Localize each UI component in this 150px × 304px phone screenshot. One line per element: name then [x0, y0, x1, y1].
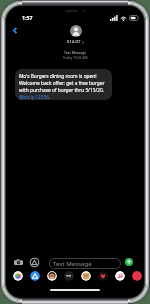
button[interactable]: More apps	[132, 271, 142, 281]
staticText: Welcome back offer: get a free burger	[19, 80, 105, 87]
button[interactable]: Send	[125, 258, 133, 266]
button[interactable]: Digital Touch	[98, 271, 108, 281]
button[interactable]: Back	[8, 23, 22, 37]
staticText: Mo's Burgers dining room is open!	[19, 73, 97, 80]
button[interactable]: Photos	[13, 271, 23, 281]
staticText: 514-07	[67, 39, 81, 45]
staticText: Text Message	[64, 50, 87, 54]
staticText: Text Message	[53, 259, 92, 267]
button[interactable]: Camera	[13, 257, 24, 268]
button[interactable]: 514-07	[67, 25, 84, 45]
button[interactable]: Text Message	[49, 258, 121, 269]
staticText: @bit.ly.12356.	[19, 94, 51, 100]
button[interactable]: Memoji	[47, 271, 57, 281]
button[interactable]: Mo's Burgers dining room is open!	[15, 69, 112, 100]
staticText: 1:57	[22, 14, 33, 21]
button[interactable]: Animoji	[81, 271, 91, 281]
button[interactable]: App Store	[30, 271, 40, 281]
button[interactable]: Music	[115, 271, 125, 281]
button[interactable]: Apple Pay	[64, 271, 74, 281]
staticText: Today 10:32 AM	[63, 55, 88, 59]
button[interactable]: Apps	[29, 257, 40, 268]
staticText: with purchase of burger thru 5/15/20.	[19, 87, 104, 94]
